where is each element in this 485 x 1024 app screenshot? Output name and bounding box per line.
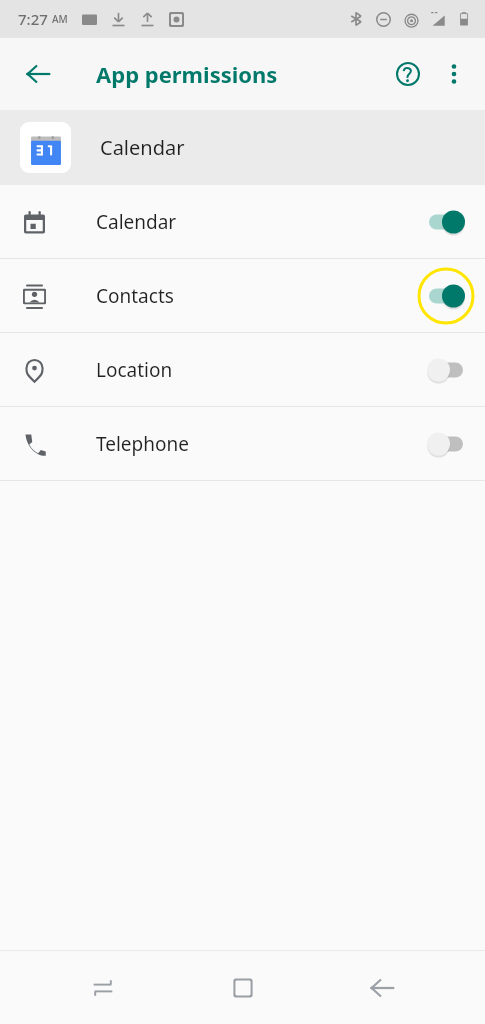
button[interactable]: More options	[431, 51, 477, 97]
button[interactable]: Telephone	[0, 407, 485, 480]
button[interactable]: Home	[207, 952, 279, 1024]
staticText: Calendar	[100, 134, 185, 161]
staticText: Telephone	[96, 431, 189, 457]
staticText: App permissions	[96, 59, 278, 89]
button[interactable]: Calendar	[0, 185, 485, 258]
button[interactable]: Contacts	[0, 259, 485, 332]
button[interactable]: Telephone permission toggle	[413, 411, 479, 477]
button[interactable]: Location permission toggle	[413, 337, 479, 403]
button[interactable]: Contacts permission toggle	[413, 263, 479, 329]
button[interactable]: Calendar permission toggle	[413, 189, 479, 255]
staticText: Calendar	[96, 209, 177, 235]
staticText: Contacts	[96, 283, 174, 309]
staticText: 7:27	[18, 9, 48, 29]
staticText: Location	[96, 357, 173, 383]
button[interactable]: Location	[0, 333, 485, 406]
button[interactable]: Switch apps	[67, 952, 139, 1024]
button[interactable]: Back	[14, 50, 62, 98]
staticText: AM	[52, 12, 68, 26]
button[interactable]: Help	[385, 51, 431, 97]
button[interactable]: Back	[346, 952, 418, 1024]
button[interactable]: Calendar	[0, 110, 485, 185]
